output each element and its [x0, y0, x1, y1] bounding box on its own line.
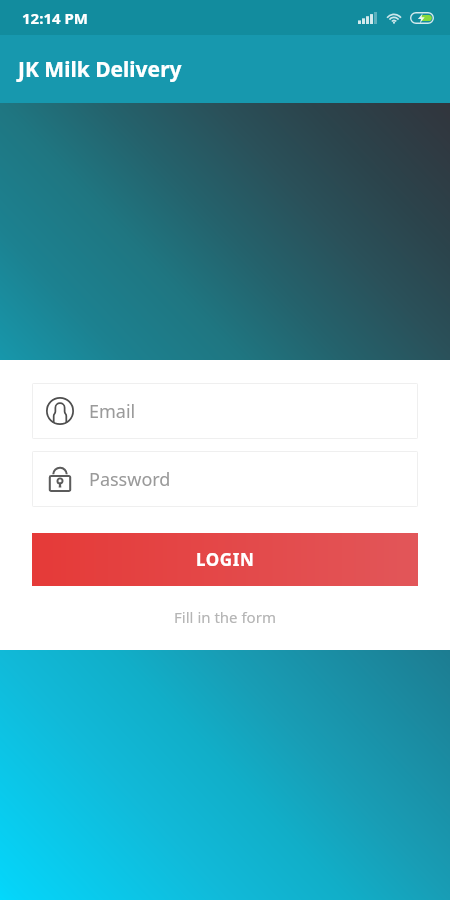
other: Wi-Fi connected	[386, 12, 402, 24]
button[interactable]: Email	[32, 383, 418, 439]
staticText: Fill in the form	[0, 607, 450, 627]
button[interactable]: LOGIN	[32, 533, 418, 586]
other: Mobile signal strength	[358, 12, 377, 24]
staticText: JK Milk Delivery	[18, 55, 182, 84]
button[interactable]: Password	[32, 451, 418, 507]
staticText: LOGIN	[196, 548, 255, 571]
staticText: Email	[89, 399, 136, 424]
staticText: Password	[89, 467, 171, 492]
other: Battery charging	[410, 12, 434, 24]
staticText: 12:14 PM	[22, 8, 88, 28]
